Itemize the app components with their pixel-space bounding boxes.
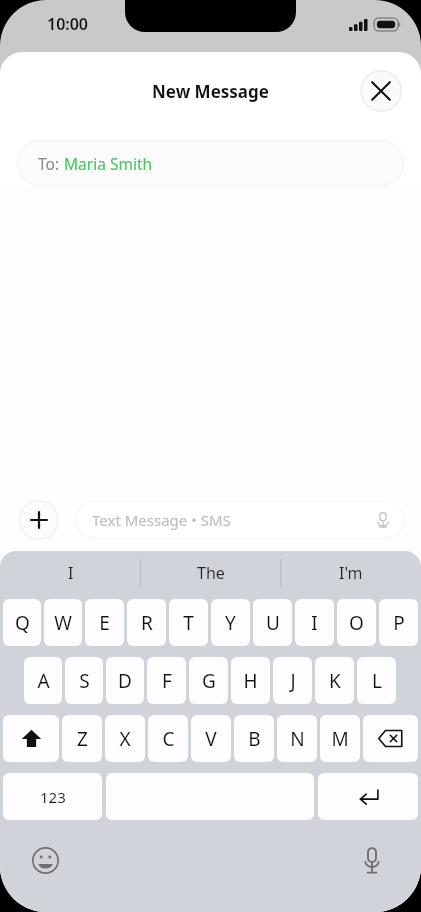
staticText: U [266, 610, 280, 636]
staticText: R [141, 610, 153, 636]
staticText: L [372, 668, 382, 694]
button[interactable]: H [231, 657, 270, 704]
staticText: B [248, 726, 261, 752]
button[interactable]: Text Message • SMS [76, 501, 404, 539]
staticText: K [329, 668, 341, 694]
staticText: V [205, 726, 217, 752]
button[interactable]: 123 [3, 773, 102, 820]
button[interactable]: Close [360, 70, 402, 112]
staticText: M [331, 726, 349, 752]
staticText: H [243, 668, 258, 694]
button[interactable]: N [277, 715, 317, 762]
staticText: X [119, 726, 131, 752]
button[interactable]: Emoji [26, 841, 64, 879]
button[interactable]: Y [211, 599, 250, 646]
button[interactable]: Q [3, 599, 41, 646]
staticText: Y [225, 610, 236, 636]
button[interactable]: I'm [281, 551, 421, 595]
button[interactable]: S [65, 657, 103, 704]
button[interactable]: X [105, 715, 145, 762]
staticText: 10:00 [47, 13, 89, 35]
staticText: Maria Smith [64, 153, 153, 174]
button[interactable]: Add attachment [19, 500, 59, 540]
staticText: I [68, 562, 74, 584]
button[interactable]: I [295, 599, 334, 646]
button[interactable]: Return [318, 773, 418, 820]
button[interactable]: U [253, 599, 292, 646]
button[interactable]: D [106, 657, 144, 704]
button[interactable]: T [169, 599, 208, 646]
button[interactable]: G [189, 657, 228, 704]
staticText: S [79, 668, 90, 694]
staticText: G [202, 668, 216, 694]
button[interactable]: A [24, 657, 62, 704]
button[interactable]: O [337, 599, 376, 646]
button[interactable]: J [273, 657, 312, 704]
staticText: New Message [152, 80, 269, 103]
staticText: A [37, 668, 50, 694]
button[interactable]: F [147, 657, 186, 704]
button[interactable]: P [379, 599, 418, 646]
staticText: O [349, 610, 364, 636]
button[interactable]: Audio message [372, 509, 394, 531]
staticText: Q [15, 610, 30, 636]
button[interactable]: K [315, 657, 354, 704]
button[interactable]: V [191, 715, 231, 762]
staticText: The [197, 562, 225, 584]
staticText: N [290, 726, 305, 752]
button[interactable]: W [44, 599, 82, 646]
button[interactable]: I [0, 551, 141, 595]
staticText: F [162, 668, 172, 694]
staticText: 123 [40, 787, 66, 807]
button[interactable]: E [85, 599, 124, 646]
button[interactable]: Z [62, 715, 102, 762]
staticText: W [54, 610, 72, 636]
button[interactable]: The [141, 551, 281, 595]
button[interactable]: C [148, 715, 188, 762]
staticText: T [183, 610, 194, 636]
button[interactable]: L [357, 657, 396, 704]
staticText: I [311, 610, 318, 636]
staticText: Z [77, 726, 88, 752]
staticText: C [162, 726, 175, 752]
button[interactable]: R [127, 599, 166, 646]
button[interactable]: To: [17, 140, 404, 186]
staticText: J [290, 668, 296, 694]
button[interactable]: Dictation [353, 841, 391, 879]
staticText: P [393, 610, 405, 636]
button[interactable]: Shift [3, 715, 59, 762]
button[interactable]: M [320, 715, 360, 762]
button[interactable]: Backspace [363, 715, 418, 762]
staticText: I'm [339, 562, 363, 584]
staticText: D [118, 668, 132, 694]
staticText: To: [38, 153, 64, 174]
staticText: E [99, 610, 110, 636]
staticText: Text Message • SMS [92, 510, 231, 530]
button[interactable]: B [234, 715, 274, 762]
